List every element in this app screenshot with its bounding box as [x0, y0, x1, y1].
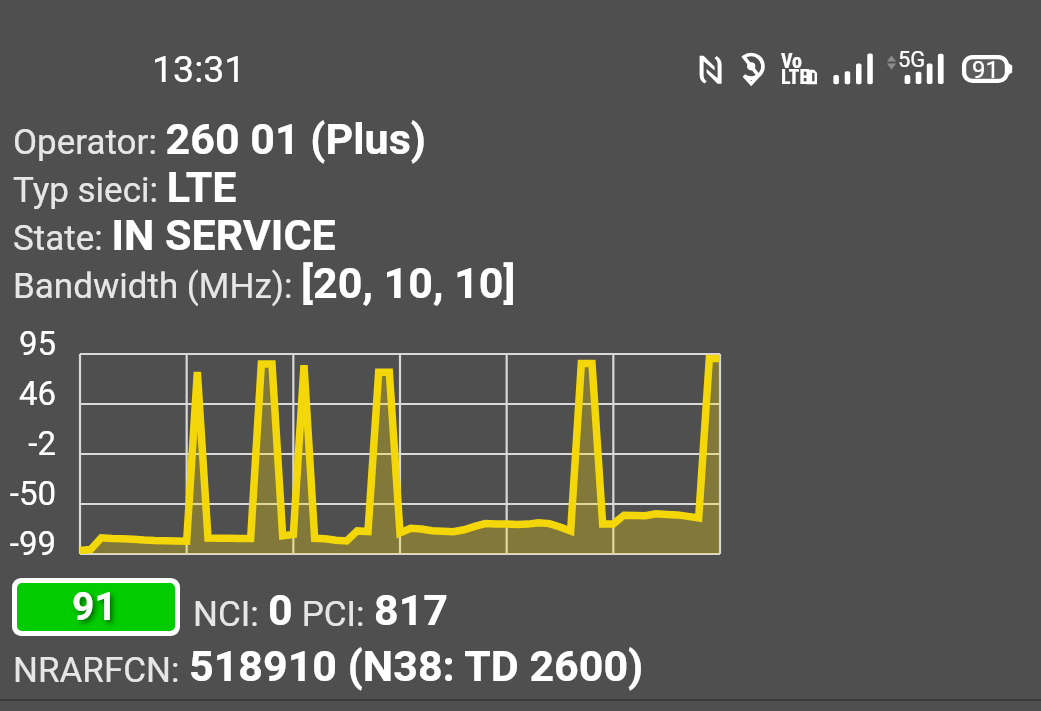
other: VoLTE	[781, 49, 803, 72]
staticText: 91	[72, 584, 117, 630]
staticText: 0	[268, 585, 293, 635]
staticText: 5G	[898, 47, 926, 73]
staticText: Vo	[781, 49, 803, 72]
staticText: Bandwidth (MHz): [20, 10, 10]	[13, 258, 516, 308]
staticText: -2	[28, 424, 56, 463]
staticText: NCI:	[193, 594, 268, 635]
staticText: LTE	[781, 65, 810, 88]
button[interactable]: 91	[17, 583, 175, 631]
staticText: 13:31	[152, 47, 246, 91]
staticText: Operator: 260 01 (Plus)	[13, 114, 426, 164]
staticText: NRARFCN:	[13, 650, 189, 691]
staticText: 91	[972, 56, 999, 84]
staticText: 46	[18, 374, 56, 413]
staticText: State: IN SERVICE	[13, 210, 336, 260]
staticText: PCI:	[293, 594, 374, 635]
staticText: 817	[374, 585, 449, 635]
staticText: 95	[18, 324, 56, 363]
staticText: -99	[9, 524, 56, 563]
staticText: Typ sieci: LTE	[13, 162, 237, 212]
staticText: 518910 (N38: TD 2600)	[189, 641, 644, 691]
staticText: -50	[9, 474, 56, 513]
